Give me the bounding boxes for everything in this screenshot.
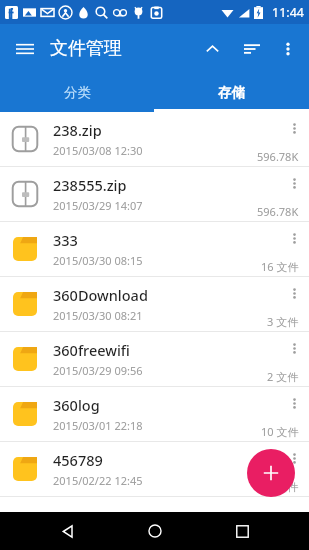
button[interactable]: 360Download bbox=[0, 277, 309, 332]
button[interactable]: Item menu bbox=[281, 280, 307, 306]
button[interactable]: Recents bbox=[222, 512, 262, 550]
staticText: 16 文件 bbox=[261, 259, 299, 274]
staticText: 存储 bbox=[218, 84, 245, 101]
button[interactable]: 360freewifi bbox=[0, 332, 309, 387]
staticText: 596.78K bbox=[257, 149, 299, 164]
button[interactable]: Item menu bbox=[281, 445, 307, 471]
staticText: 596.78K bbox=[257, 204, 299, 219]
staticText: 360freewifi bbox=[53, 340, 130, 360]
button[interactable]: Sort bbox=[235, 32, 269, 66]
staticText: 3 文件 bbox=[267, 314, 299, 329]
button[interactable]: More options bbox=[271, 32, 305, 66]
button[interactable]: Add bbox=[247, 449, 295, 497]
staticText: 11:44 bbox=[272, 4, 304, 21]
button[interactable]: Back bbox=[47, 512, 87, 550]
staticText: 文件管理 bbox=[50, 37, 122, 60]
staticText: 10 文件 bbox=[261, 424, 299, 439]
button[interactable]: Item menu bbox=[281, 115, 307, 141]
staticText: 2 文件 bbox=[267, 369, 299, 384]
staticText: 456789 bbox=[53, 450, 103, 470]
staticText: 360Download bbox=[53, 285, 148, 305]
staticText: 2015/03/30 08:21 bbox=[53, 308, 143, 323]
staticText: 2015/03/01 22:18 bbox=[53, 418, 143, 433]
button[interactable]: 333 bbox=[0, 222, 309, 277]
button[interactable]: 360log bbox=[0, 387, 309, 442]
button[interactable]: 分类 bbox=[0, 73, 154, 112]
button[interactable]: Item menu bbox=[281, 335, 307, 361]
staticText: 2015/03/08 12:30 bbox=[53, 143, 143, 158]
button[interactable]: Collapse bbox=[195, 32, 229, 66]
button[interactable]: Item menu bbox=[281, 390, 307, 416]
button[interactable]: Home bbox=[135, 512, 175, 550]
staticText: 238555.zip bbox=[53, 175, 127, 195]
button[interactable]: Menu bbox=[8, 32, 42, 66]
staticText: 333 bbox=[53, 230, 78, 250]
staticText: 2015/03/29 09:56 bbox=[53, 363, 143, 378]
button[interactable]: Item menu bbox=[281, 225, 307, 251]
staticText: 238.zip bbox=[53, 120, 102, 140]
staticText: 2015/02/22 12:45 bbox=[53, 473, 143, 488]
staticText: 2015/03/29 14:07 bbox=[53, 198, 143, 213]
staticText: 5 文件 bbox=[267, 479, 299, 494]
button[interactable]: 238.zip bbox=[0, 112, 309, 167]
button[interactable]: 456789 bbox=[0, 442, 309, 497]
button[interactable]: 238555.zip bbox=[0, 167, 309, 222]
staticText: 2015/03/30 08:15 bbox=[53, 253, 143, 268]
staticText: 360log bbox=[53, 395, 100, 415]
staticText: 分类 bbox=[64, 84, 91, 101]
button[interactable]: Item menu bbox=[281, 170, 307, 196]
button[interactable]: 存储 bbox=[154, 73, 309, 112]
